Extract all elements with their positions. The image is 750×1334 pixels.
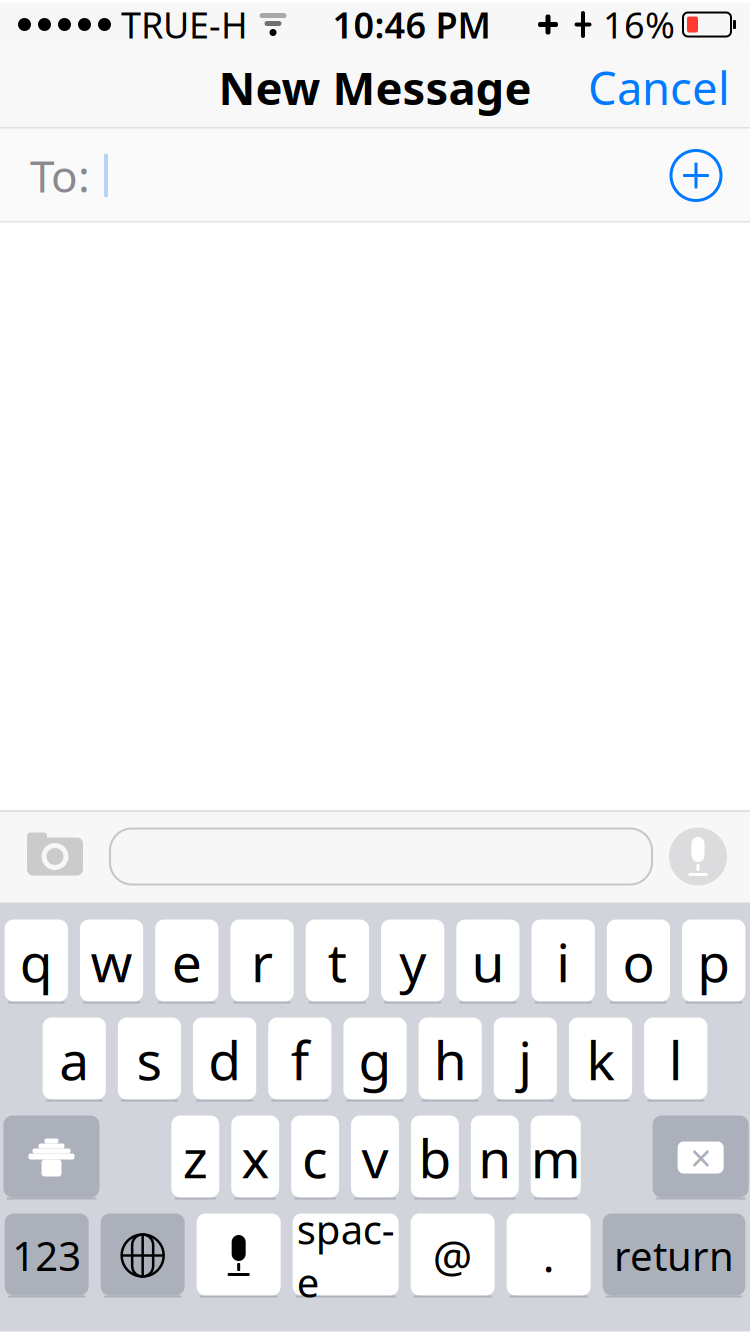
staticText: l [669, 1024, 683, 1095]
button[interactable]: Next keyboard [101, 1213, 185, 1297]
staticText: u [471, 926, 504, 997]
staticText: 123 [12, 1229, 81, 1282]
staticText: return [614, 1229, 734, 1282]
button[interactable]: t [306, 919, 369, 1003]
button[interactable]: Shift [3, 1115, 99, 1199]
staticText: × [690, 1133, 711, 1182]
button[interactable]: g [343, 1017, 407, 1101]
button[interactable]: r [230, 919, 294, 1003]
staticText: @ [433, 1226, 473, 1285]
staticText: . [543, 1226, 555, 1285]
button[interactable]: y [381, 919, 444, 1003]
staticText: s [136, 1024, 162, 1095]
button[interactable]: b [411, 1115, 459, 1199]
button[interactable]: Camera [0, 810, 110, 902]
staticText: t [328, 926, 347, 997]
button[interactable]: i [531, 919, 595, 1003]
staticText: q [20, 926, 53, 997]
staticText: 16% [603, 1, 675, 48]
staticText: o [622, 926, 654, 997]
button[interactable]: o [607, 919, 670, 1003]
staticText: v [361, 1122, 388, 1193]
staticText: d [208, 1024, 241, 1095]
staticText: TRUE-H [121, 1, 248, 48]
button[interactable]: w [80, 919, 143, 1003]
button[interactable]: Add contact [656, 135, 736, 215]
staticText: x [241, 1122, 269, 1193]
button[interactable]: k [569, 1017, 632, 1101]
button[interactable]: return [603, 1213, 745, 1297]
staticText: New Message [218, 57, 531, 118]
button[interactable]: 123 [5, 1213, 89, 1297]
button[interactable]: u [456, 919, 520, 1003]
button[interactable]: Dictate [652, 810, 744, 902]
staticText: m [531, 1122, 581, 1193]
button[interactable]: l [644, 1017, 707, 1101]
staticText: p [697, 926, 730, 997]
staticText: a [59, 1024, 89, 1095]
button[interactable]: Delete [653, 1115, 749, 1199]
staticText: f [291, 1024, 309, 1095]
button[interactable]: n [471, 1115, 519, 1199]
staticText: b [418, 1122, 451, 1193]
button[interactable]: . [507, 1213, 591, 1297]
button[interactable]: Dictation [197, 1213, 281, 1297]
button[interactable]: x [231, 1115, 279, 1199]
staticText: space [297, 1202, 395, 1309]
button[interactable]: s [118, 1017, 181, 1101]
button[interactable]: p [682, 919, 745, 1003]
staticText: w [91, 926, 133, 997]
staticText: n [478, 1122, 511, 1193]
button[interactable]: j [494, 1017, 557, 1101]
staticText: c [302, 1122, 328, 1193]
staticText: g [358, 1024, 391, 1095]
button[interactable]: f [268, 1017, 331, 1101]
staticText: 10:46 PM [332, 1, 490, 48]
button[interactable]: Cancel [568, 41, 750, 134]
staticText: k [587, 1024, 615, 1095]
staticText: y [399, 926, 426, 997]
button[interactable]: d [193, 1017, 256, 1101]
button[interactable]: space [293, 1213, 399, 1297]
staticText: z [183, 1122, 208, 1193]
staticText: j [518, 1024, 532, 1095]
button[interactable]: e [155, 919, 218, 1003]
staticText: h [434, 1024, 467, 1095]
staticText: To: [30, 146, 90, 205]
button[interactable]: c [291, 1115, 339, 1199]
button[interactable]: @ [411, 1213, 495, 1297]
button[interactable]: q [5, 919, 68, 1003]
button[interactable]: z [171, 1115, 219, 1199]
button[interactable]: m [531, 1115, 581, 1199]
staticText: e [172, 926, 202, 997]
button[interactable]: v [351, 1115, 399, 1199]
staticText: Cancel [588, 57, 730, 118]
staticText: i [556, 926, 570, 997]
staticText: r [251, 926, 273, 997]
button[interactable]: a [43, 1017, 106, 1101]
button[interactable]: h [419, 1017, 482, 1101]
